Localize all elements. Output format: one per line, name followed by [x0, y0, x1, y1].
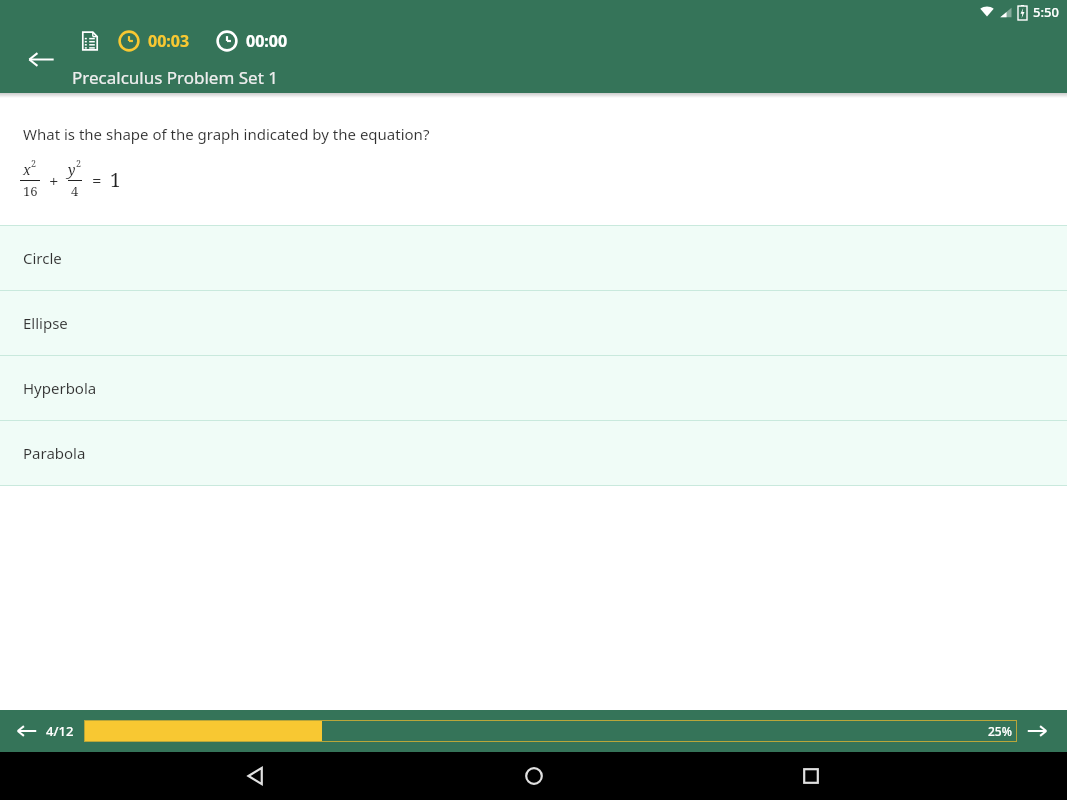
- staticText: x: [23, 160, 31, 179]
- button[interactable]: Back: [234, 754, 278, 798]
- staticText: 2: [31, 157, 37, 169]
- staticText: 25%: [988, 723, 1012, 739]
- button[interactable]: Circle: [0, 226, 1067, 290]
- staticText: Ellipse: [23, 313, 68, 333]
- staticText: Circle: [23, 248, 62, 268]
- button[interactable]: 00:03: [118, 30, 190, 52]
- button[interactable]: Parabola: [0, 421, 1067, 485]
- staticText: =: [92, 169, 102, 192]
- staticText: 4: [71, 182, 79, 200]
- button[interactable]: Ellipse: [0, 291, 1067, 355]
- staticText: 1: [110, 167, 121, 193]
- staticText: Precalculus Problem Set 1: [72, 66, 278, 89]
- staticText: Parabola: [23, 443, 86, 463]
- button[interactable]: Hyperbola: [0, 356, 1067, 420]
- staticText: +: [49, 169, 59, 192]
- staticText: y: [68, 160, 76, 179]
- button[interactable]: Recents: [789, 754, 833, 798]
- staticText: What is the shape of the graph indicated…: [23, 124, 430, 144]
- button[interactable]: Next: [1017, 711, 1057, 751]
- button[interactable]: Previous: [10, 714, 44, 748]
- button[interactable]: Back: [22, 40, 60, 78]
- staticText: Hyperbola: [23, 378, 97, 398]
- staticText: 00:03: [148, 30, 190, 52]
- staticText: 2: [76, 157, 82, 169]
- staticText: 5:50: [1033, 3, 1059, 21]
- staticText: 00:00: [246, 30, 288, 52]
- staticText: 16: [23, 182, 38, 200]
- staticText: 4/12: [46, 722, 74, 740]
- button[interactable]: 00:00: [216, 30, 288, 52]
- button[interactable]: Home: [512, 754, 556, 798]
